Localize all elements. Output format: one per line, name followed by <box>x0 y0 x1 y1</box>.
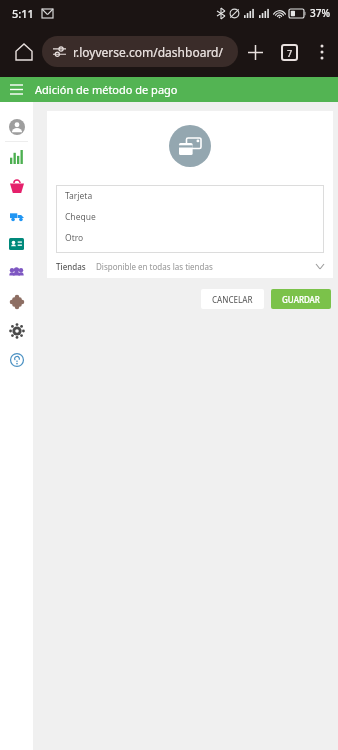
staticText: 5:11 <box>12 6 34 21</box>
button[interactable]: More options <box>306 36 338 68</box>
button[interactable]: Home <box>8 36 40 68</box>
button[interactable]: Reports <box>0 142 33 171</box>
button[interactable]: Items <box>0 171 33 200</box>
staticText: 37% <box>310 6 330 20</box>
staticText: Tarjeta <box>65 190 93 202</box>
staticText: 7 <box>287 47 293 59</box>
button[interactable]: Menu <box>0 77 32 102</box>
button[interactable]: Cheque <box>56 206 324 227</box>
button[interactable]: Employees <box>0 229 33 258</box>
button[interactable]: Customers <box>0 258 33 287</box>
button[interactable]: GUARDAR <box>271 289 331 309</box>
button[interactable]: Integrations <box>0 287 33 316</box>
button[interactable]: Tiendas <box>56 258 324 275</box>
staticText: GUARDAR <box>282 294 320 305</box>
button[interactable]: New tab <box>238 35 272 69</box>
staticText: Tiendas <box>56 261 86 272</box>
staticText: Otro <box>65 232 84 244</box>
button[interactable]: r.loyverse.com/dashboard/ <box>42 36 238 67</box>
staticText: CANCELAR <box>212 294 253 305</box>
button[interactable]: Tabs: 7 <box>272 35 306 69</box>
staticText: Cheque <box>65 211 96 223</box>
button[interactable]: Otro <box>56 227 324 248</box>
button[interactable]: Tarjeta <box>56 185 324 206</box>
button[interactable]: Help <box>0 345 33 374</box>
button[interactable]: Inventory <box>0 200 33 229</box>
staticText: r.loyverse.com/dashboard/ <box>73 44 223 60</box>
button[interactable]: CANCELAR <box>201 289 264 309</box>
button[interactable]: Account <box>0 112 33 141</box>
button[interactable]: Settings <box>0 316 33 345</box>
staticText: Adición de método de pago <box>35 82 178 97</box>
staticText: Disponible en todas las tiendas <box>96 261 316 272</box>
